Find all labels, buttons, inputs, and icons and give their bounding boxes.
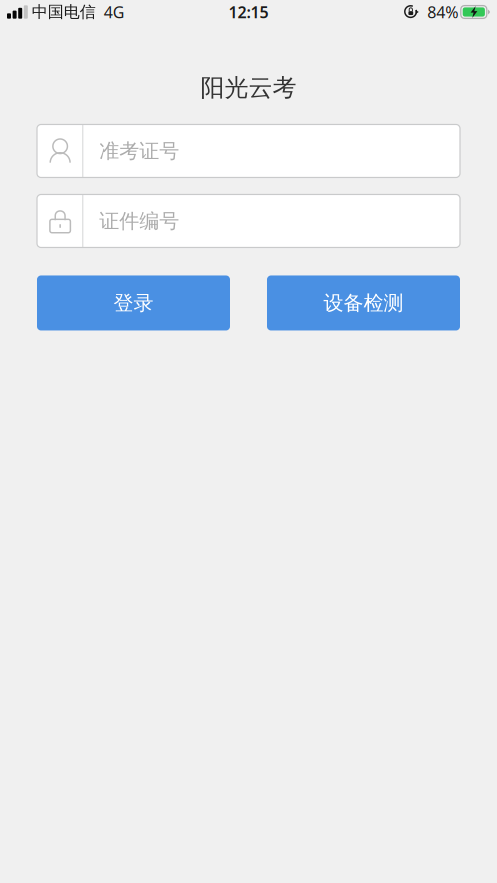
- staticText: 准考证号: [99, 139, 179, 163]
- staticText: 证件编号: [99, 209, 179, 233]
- staticText: 设备检测: [323, 291, 403, 315]
- button[interactable]: 设备检测: [267, 275, 460, 330]
- staticText: 阳光云考: [200, 73, 296, 102]
- staticText: 12:15: [228, 1, 268, 23]
- staticText: 4G: [104, 1, 125, 23]
- staticText: 登录: [113, 291, 153, 315]
- button[interactable]: 准考证号: [37, 124, 460, 177]
- staticText: 中国电信: [32, 2, 96, 22]
- staticText: 84%: [427, 1, 458, 23]
- button[interactable]: 证件编号: [37, 194, 460, 247]
- button[interactable]: 登录: [37, 275, 230, 330]
